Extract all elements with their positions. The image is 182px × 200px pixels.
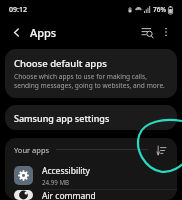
- button[interactable]: Samsung app settings: [5, 105, 177, 130]
- button[interactable]: More options: [157, 23, 175, 41]
- staticText: 24.99 MB: [42, 178, 70, 186]
- staticText: Samsung app settings: [14, 112, 110, 124]
- staticText: Accessibility: [42, 165, 90, 177]
- staticText: Air command: [42, 190, 96, 200]
- button[interactable]: Air command: [5, 190, 177, 200]
- staticText: Your apps: [14, 145, 50, 155]
- button[interactable]: Sort: [154, 143, 168, 157]
- staticText: 09:12: [9, 5, 27, 15]
- staticText: Choose which apps to use for making call…: [14, 72, 168, 90]
- button[interactable]: Search: [137, 22, 157, 42]
- button[interactable]: Accessibility: [5, 161, 177, 189]
- staticText: Apps: [30, 25, 57, 40]
- button[interactable]: Choose default apps: [5, 49, 177, 98]
- staticText: Choose default apps: [14, 57, 107, 70]
- staticText: 76%: [153, 5, 166, 14]
- button[interactable]: Back: [7, 23, 25, 41]
